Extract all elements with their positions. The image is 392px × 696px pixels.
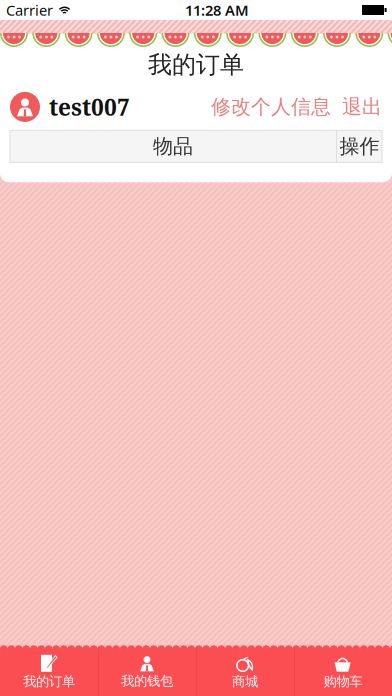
staticText: 购物车: [323, 673, 362, 690]
staticText: 退出: [342, 95, 382, 119]
button[interactable]: 购物车: [294, 652, 392, 692]
staticText: 我的订单: [23, 673, 75, 690]
staticText: test007: [49, 91, 130, 122]
staticText: 修改个人信息: [211, 95, 331, 119]
staticText: 11:28 AM: [185, 0, 249, 20]
staticText: Carrier: [6, 0, 53, 20]
staticText: 我的钱包: [121, 673, 173, 689]
staticText: 操作: [339, 134, 379, 159]
button[interactable]: 我的钱包: [98, 652, 196, 692]
staticText: 物品: [153, 134, 193, 159]
staticText: 我的订单: [148, 50, 244, 79]
button[interactable]: 商城: [196, 652, 294, 692]
button[interactable]: 修改个人信息: [211, 95, 331, 119]
staticText: 商城: [232, 673, 258, 690]
button[interactable]: 我的订单: [0, 652, 98, 692]
button[interactable]: 退出: [331, 95, 382, 119]
